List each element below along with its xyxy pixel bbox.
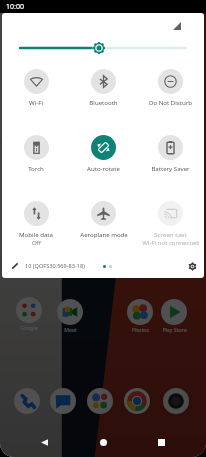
- button[interactable]: CHROME: [124, 388, 150, 414]
- staticText: Play Store: [162, 326, 187, 333]
- other: Google: [16, 297, 42, 323]
- staticText: Aeroplane mode: [80, 230, 128, 238]
- button[interactable]: Aeroplane mode: [70, 190, 137, 256]
- button[interactable]: Edit: [11, 262, 85, 270]
- staticText: 10:00: [6, 2, 24, 12]
- other: Edit: [11, 262, 19, 270]
- button[interactable]: Bluetooth: [70, 58, 137, 124]
- button[interactable]: Wi-Fi: [2, 58, 70, 124]
- staticText: Auto-rotate: [87, 164, 120, 172]
- staticText: Screen cast: [154, 230, 187, 238]
- staticText: Mobile data: [19, 230, 53, 238]
- button[interactable]: Google: [16, 297, 42, 331]
- staticText: Wi-Fi: [29, 98, 43, 106]
- button[interactable]: [2, 41, 204, 55]
- staticText: Meet: [64, 326, 77, 333]
- other: MESSAGES: [50, 388, 76, 414]
- other: ASSIST: [87, 388, 113, 414]
- staticText: Bluetooth: [89, 98, 118, 106]
- button[interactable]: Do Not Disturb: [137, 58, 204, 124]
- button[interactable]: PHONE: [14, 388, 40, 414]
- staticText: Google: [20, 324, 38, 331]
- staticText: Do Not Disturb: [149, 98, 192, 106]
- other: Photos: [127, 299, 153, 325]
- other: CAMERA: [163, 388, 189, 414]
- staticText: Photos: [132, 326, 149, 333]
- button[interactable]: Meet: [57, 299, 83, 333]
- button[interactable]: Play Store: [161, 299, 187, 333]
- other: Play Store: [161, 299, 187, 325]
- button[interactable]: Screen cast: [137, 190, 204, 256]
- staticText: Battery Saver: [151, 164, 190, 172]
- button[interactable]: Mobile data: [2, 190, 70, 256]
- staticText: Wi-Fi not connected: [142, 238, 199, 246]
- button[interactable]: Back: [34, 432, 54, 452]
- button[interactable]: ASSIST: [87, 388, 113, 414]
- staticText: Off: [32, 238, 41, 246]
- button[interactable]: Photos: [127, 299, 153, 333]
- staticText: 10 (QOFS30.569-83-18): [25, 262, 85, 270]
- other: PHONE: [14, 388, 40, 414]
- button[interactable]: Torch: [2, 124, 70, 190]
- button[interactable]: Battery Saver: [137, 124, 204, 190]
- button[interactable]: Settings: [186, 260, 199, 273]
- other: CHROME: [124, 388, 150, 414]
- button[interactable]: Recents: [151, 432, 171, 452]
- other: Meet: [57, 299, 83, 325]
- button[interactable]: Home: [93, 432, 113, 452]
- staticText: Torch: [28, 164, 44, 172]
- other: Signal: [173, 22, 181, 30]
- button[interactable]: MESSAGES: [50, 388, 76, 414]
- button[interactable]: CAMERA: [163, 388, 189, 414]
- button[interactable]: Auto-rotate: [70, 124, 137, 190]
